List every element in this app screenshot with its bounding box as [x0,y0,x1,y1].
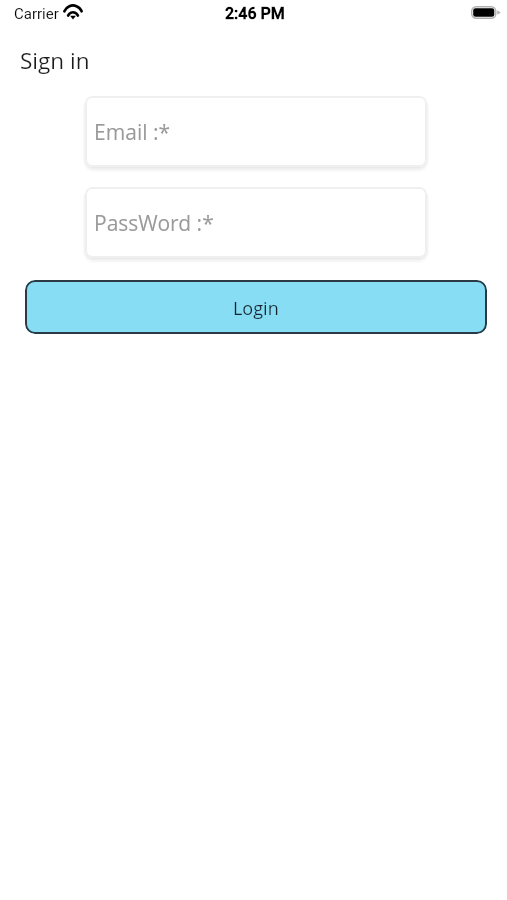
staticText: Sign in [20,45,90,76]
staticText: Carrier [14,5,59,23]
staticText: Email :* [94,118,171,147]
staticText: Login [233,296,279,321]
other: Wi-Fi signal [64,5,83,20]
button[interactable]: PassWord :* [85,187,427,258]
other: Battery full [471,6,501,19]
staticText: PassWord :* [94,209,214,238]
staticText: 2:46 PM [225,4,285,23]
button[interactable]: Email :* [85,96,427,167]
button[interactable]: Login [25,280,487,334]
